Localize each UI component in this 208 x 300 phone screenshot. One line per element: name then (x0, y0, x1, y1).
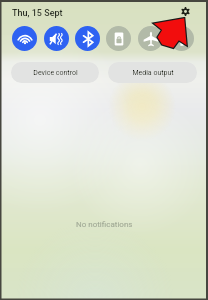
staticText: No notifications (76, 220, 133, 229)
button[interactable]: Wi-Fi (9, 23, 40, 54)
staticText: Media output (132, 69, 174, 77)
button[interactable]: Media output (108, 62, 197, 83)
button[interactable]: Settings (178, 4, 193, 19)
button[interactable]: Airplane mode (135, 23, 166, 54)
button[interactable]: Auto rotate (103, 23, 134, 54)
button[interactable]: Flashlight (166, 23, 197, 54)
staticText: Thu, 15 Sept (12, 8, 63, 19)
button[interactable]: Device control (11, 62, 99, 83)
staticText: Device control (33, 69, 78, 77)
button[interactable]: Bluetooth (72, 23, 103, 54)
button[interactable]: Mute (41, 23, 72, 54)
